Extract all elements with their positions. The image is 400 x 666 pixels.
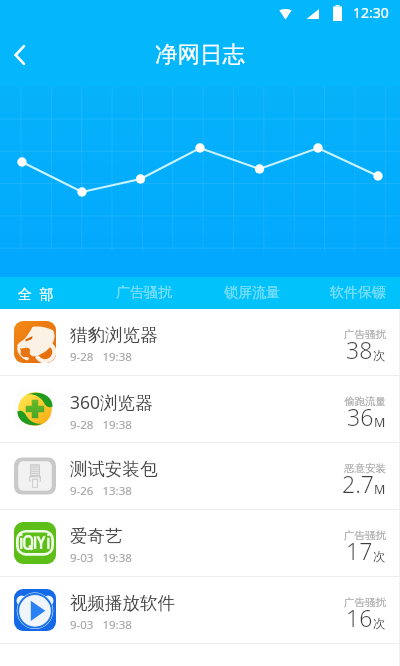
button[interactable]: 爱奇艺: [0, 510, 400, 576]
button[interactable]: 锁屏流量: [198, 277, 305, 309]
staticText: 全 部: [18, 284, 54, 303]
staticText: 17: [346, 535, 373, 566]
staticText: 偷跑流量: [344, 395, 386, 408]
staticText: 测试安装包: [70, 458, 158, 480]
staticText: 锁屏流量: [224, 284, 280, 302]
staticText: 次: [373, 348, 386, 364]
staticText: 2.7: [342, 468, 374, 499]
staticText: M: [374, 414, 386, 431]
staticText: 9-28 19:38: [70, 349, 132, 365]
button[interactable]: 视频播放软件: [0, 577, 400, 643]
staticText: M: [374, 481, 386, 498]
staticText: 猎豹浏览器: [70, 324, 158, 346]
staticText: 12:30: [353, 3, 389, 22]
staticText: 爱奇艺: [70, 525, 123, 547]
staticText: 次: [373, 549, 386, 565]
staticText: 广告骚扰: [344, 596, 386, 609]
staticText: 软件保镖: [330, 284, 386, 302]
button[interactable]: 广告骚扰: [90, 277, 197, 309]
button[interactable]: 猎豹浏览器: [0, 309, 400, 375]
staticText: 9-03 19:38: [70, 617, 132, 633]
staticText: 9-03 19:38: [70, 550, 132, 566]
button[interactable]: 360浏览器: [0, 376, 400, 442]
button[interactable]: Back: [0, 34, 44, 78]
staticText: 广告骚扰: [116, 284, 172, 302]
button[interactable]: 全 部: [0, 277, 89, 309]
staticText: 9-26 13:38: [70, 483, 132, 499]
staticText: 16: [346, 602, 373, 633]
staticText: 36: [347, 401, 374, 432]
button[interactable]: 测试安装包: [0, 443, 400, 509]
staticText: 净网日志: [155, 40, 245, 68]
staticText: 广告骚扰: [344, 529, 386, 542]
staticText: 次: [373, 616, 386, 632]
staticText: 视频播放软件: [70, 592, 175, 614]
button[interactable]: 软件保镖: [304, 277, 400, 309]
staticText: 360浏览器: [70, 390, 153, 414]
staticText: 广告骚扰: [344, 328, 386, 341]
staticText: 恶意安装: [344, 462, 386, 475]
staticText: 9-28 19:38: [70, 417, 132, 433]
staticText: 38: [346, 334, 373, 365]
